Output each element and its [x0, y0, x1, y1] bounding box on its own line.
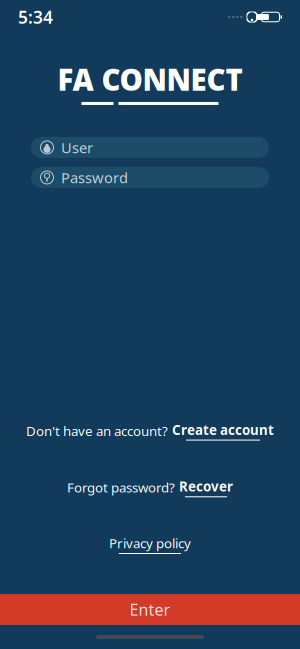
staticText: Enter: [129, 599, 170, 620]
button[interactable]: Enter: [0, 594, 300, 625]
button[interactable]: Don't have an account?: [0, 413, 300, 449]
button[interactable]: Password: [31, 167, 269, 188]
staticText: Forgot password?: [67, 479, 175, 496]
staticText: 5:34: [18, 5, 53, 28]
staticText: User: [61, 138, 93, 157]
staticText: Create account: [172, 421, 274, 439]
staticText: Privacy policy: [109, 534, 191, 552]
staticText: Recover: [179, 478, 233, 495]
button[interactable]: Forgot password?: [0, 470, 300, 505]
button[interactable]: Privacy policy: [0, 526, 300, 562]
staticText: Don't have an account?: [26, 422, 168, 440]
staticText: FA CONNECT: [57, 60, 242, 99]
button[interactable]: User: [31, 137, 269, 158]
staticText: Password: [61, 168, 128, 187]
